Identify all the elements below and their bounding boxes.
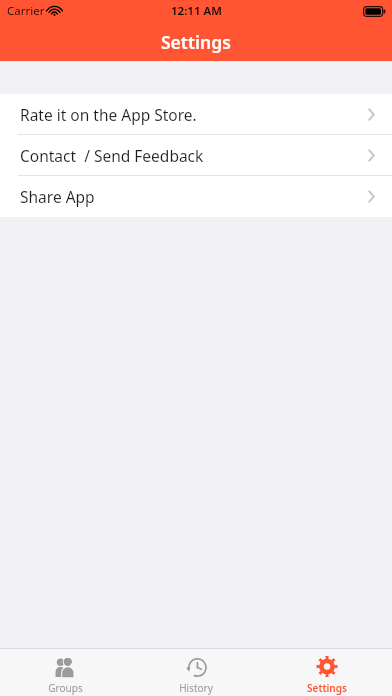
other: Groups [53, 655, 77, 679]
button[interactable]: Contact / Send Feedback [0, 135, 392, 176]
staticText: Groups [48, 681, 83, 695]
staticText: Settings [307, 681, 347, 695]
button[interactable]: Groups [0, 651, 130, 695]
staticText: 12:11 AM [171, 3, 222, 19]
staticText: Settings [161, 30, 231, 54]
other: Settings [315, 655, 339, 679]
staticText: Contact / Send Feedback [20, 145, 204, 166]
staticText: Rate it on the App Store. [20, 104, 197, 125]
button[interactable]: History [130, 651, 261, 695]
other: History [184, 655, 208, 679]
staticText: Carrier [7, 3, 45, 19]
button[interactable]: Rate it on the App Store. [0, 94, 392, 135]
button[interactable]: Settings [261, 651, 392, 695]
staticText: Share App [20, 186, 95, 207]
button[interactable]: Share App [0, 176, 392, 217]
staticText: History [179, 681, 213, 695]
